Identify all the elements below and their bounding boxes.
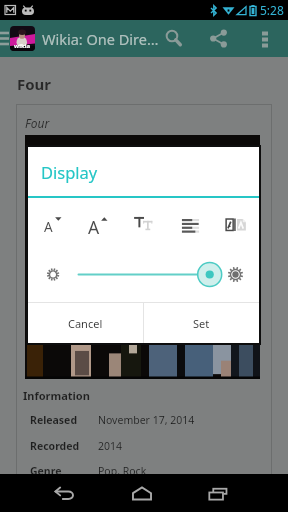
button[interactable]: Increase font size <box>75 202 121 248</box>
staticText: Set <box>193 316 210 331</box>
staticText: Four <box>17 74 52 94</box>
button[interactable]: More options <box>247 20 283 57</box>
staticText: 5:28 <box>260 2 284 18</box>
staticText: Released <box>30 413 112 427</box>
staticText: Genre <box>30 464 112 478</box>
button[interactable]: Typeface <box>121 202 167 248</box>
button[interactable]: Theme <box>213 202 259 248</box>
staticText: 2014 <box>98 439 123 453</box>
button[interactable]: Line spacing <box>167 202 213 248</box>
staticText: Recorded <box>30 439 112 453</box>
button[interactable]: Share <box>200 20 236 57</box>
button[interactable]: Home <box>113 474 171 512</box>
staticText: Information <box>23 388 90 403</box>
staticText: Cancel <box>68 316 103 331</box>
staticText: Four <box>25 115 50 131</box>
staticText: Display <box>41 161 98 183</box>
button[interactable]: Decrease font size <box>28 202 75 248</box>
button[interactable]: Recent apps <box>190 474 248 512</box>
staticText: Pop, Rock <box>98 464 147 478</box>
button[interactable] <box>28 251 259 296</box>
button[interactable]: Set <box>144 303 259 343</box>
button[interactable]: Search <box>155 20 191 57</box>
staticText: A <box>88 215 100 239</box>
staticText: Wikia: One Dire… <box>42 29 159 49</box>
button[interactable]: Back <box>35 474 93 512</box>
button[interactable]: Navigation menu <box>0 20 10 57</box>
staticText: November 17, 2014 <box>98 413 195 427</box>
staticText: wikia <box>14 42 31 50</box>
staticText: A <box>44 218 53 236</box>
button[interactable]: Cancel <box>28 303 143 343</box>
